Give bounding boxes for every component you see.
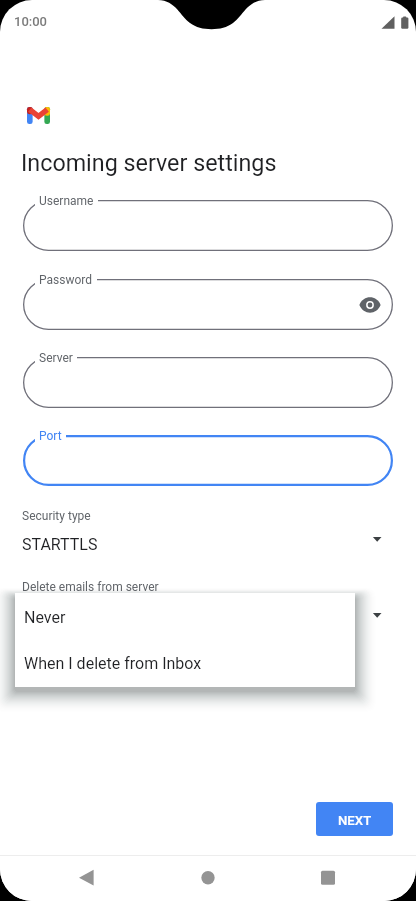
button[interactable]: Server	[23, 357, 393, 408]
staticText: Incoming server settings	[21, 149, 277, 176]
staticText: Delete emails from server	[22, 580, 159, 594]
button[interactable]: Security type	[0, 509, 416, 555]
staticText: When I delete from Inbox	[24, 654, 202, 673]
button[interactable]: Recents	[312, 862, 344, 894]
button[interactable]: Port	[23, 435, 393, 486]
staticText: STARTTLS	[22, 535, 98, 554]
button[interactable]: Password	[23, 279, 393, 330]
button[interactable]: Username	[23, 200, 393, 251]
staticText: Security type	[22, 509, 91, 523]
button[interactable]: Back	[70, 862, 102, 894]
staticText: Never	[24, 608, 66, 627]
button[interactable]: Never	[15, 593, 355, 639]
staticText: NEXT	[338, 813, 372, 828]
staticText: Server	[39, 351, 73, 365]
button[interactable]: Delete emails from server	[0, 580, 416, 626]
staticText: Port	[39, 429, 62, 443]
button[interactable]: NEXT	[316, 802, 393, 836]
button[interactable]: Show password	[356, 291, 384, 319]
button[interactable]: Home	[192, 862, 224, 894]
button[interactable]: When I delete from Inbox	[15, 639, 355, 685]
staticText: Never	[22, 606, 64, 625]
staticText: 10:00	[14, 14, 48, 29]
staticText: Password	[39, 273, 93, 287]
staticText: Username	[39, 194, 94, 208]
